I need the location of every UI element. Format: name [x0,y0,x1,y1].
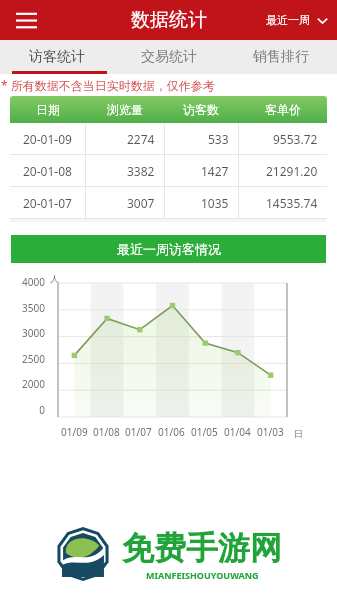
staticText: 01/03 [257,425,284,439]
button[interactable]: 20-01-08 [10,155,327,186]
button[interactable]: 20-01-07 [10,187,327,218]
staticText: 20-01-08 [23,163,72,179]
staticText: 01/05 [191,425,218,439]
staticText: 最近一周 [266,13,310,27]
staticText: 14535.74 [266,195,318,211]
staticText: 客单价 [265,102,301,117]
staticText: 3000 [0,326,45,340]
staticText: 0 [0,403,45,417]
button[interactable]: 销售排行 [225,40,337,74]
staticText: 1035 [201,195,229,211]
staticText: 01/06 [158,425,185,439]
button[interactable]: Menu [6,0,46,40]
staticText: 销售排行 [253,48,309,66]
staticText: 20-01-07 [23,195,72,211]
button[interactable]: 交易统计 [113,40,225,74]
button[interactable]: 20-01-09 [10,123,327,154]
staticText: 数据统计 [131,8,207,32]
button[interactable]: 最近一周访客情况 [11,235,326,263]
staticText: 21291.20 [266,163,318,179]
staticText: 浏览量 [107,102,143,117]
staticText: 01/09 [61,425,88,439]
staticText: MIANFEISHOUYOUWANG [146,569,259,581]
staticText: 日 [294,428,303,439]
staticText: 1427 [201,163,229,179]
staticText: 免费手游网 [122,528,282,568]
staticText: 20-01-09 [23,131,72,147]
staticText: 3500 [0,301,45,315]
staticText: 2000 [0,377,45,391]
staticText: 9553.72 [273,131,318,147]
staticText: 01/07 [125,425,152,439]
staticText: 4000 [0,275,45,289]
staticText: 533 [208,131,229,147]
staticText: 访客数 [183,102,219,117]
staticText: 人 [50,273,59,284]
button[interactable]: 访客统计 [0,40,113,74]
staticText: 3382 [127,163,155,179]
button[interactable]: 最近一周 [266,13,329,27]
staticText: 3007 [127,195,155,211]
staticText: 2500 [0,352,45,366]
staticText: 交易统计 [141,48,197,66]
staticText: * 所有数据不含当日实时数据，仅作参考 [1,77,215,93]
staticText: 访客统计 [29,48,85,66]
staticText: 2274 [127,131,155,147]
staticText: 最近一周访客情况 [117,241,221,257]
staticText: 01/04 [224,425,251,439]
staticText: 日期 [36,102,60,117]
staticText: 01/08 [93,425,120,439]
